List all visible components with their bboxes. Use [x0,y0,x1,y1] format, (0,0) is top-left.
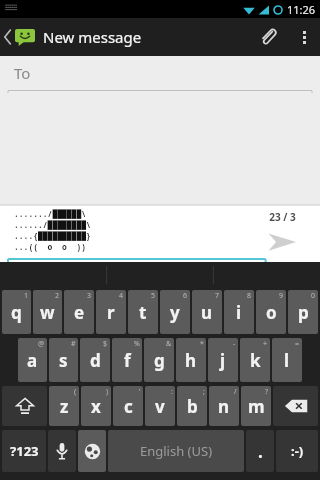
staticText: c [124,395,133,418]
button[interactable]: o [256,290,286,334]
staticText: / [234,387,237,397]
staticText: t [139,301,147,324]
staticText: ; [203,387,205,397]
staticText: g [154,349,165,372]
staticText: n [218,395,230,418]
staticText: ......./██████\ [14,208,86,219]
button[interactable]: v [145,386,175,426]
button[interactable]: New message [0,18,148,56]
button[interactable]: h [176,338,206,382]
staticText: 7 [215,291,220,301]
staticText: 2 [55,291,60,301]
staticText: d [90,349,101,372]
staticText: New message [43,27,142,47]
staticText: ...(( o o )) [14,241,86,252]
button[interactable]: d [80,338,110,382]
staticText: - [233,339,236,349]
button[interactable]: n [209,386,239,426]
button[interactable]: Voice input [48,430,76,472]
staticText: 3 [87,291,92,301]
staticText: a [27,349,38,372]
button[interactable]: w [33,290,62,334]
button[interactable]: English (US) [108,430,244,472]
staticText: % [134,339,140,349]
button[interactable]: More options [288,18,320,56]
button[interactable]: To [8,56,312,90]
staticText: 23 / 3 [269,210,296,224]
staticText: ) [106,387,109,397]
staticText: 5 [151,291,156,301]
staticText: ....../████████\ [14,219,91,230]
staticText: : [171,387,173,397]
staticText: ? [265,387,269,397]
button[interactable]: :-) [276,430,318,472]
staticText: ....{██████████} [14,230,91,241]
staticText: r [107,301,115,324]
staticText: k [250,349,261,372]
button[interactable]: ......./██████\ [0,206,244,258]
staticText: $ [103,339,108,349]
button[interactable]: Delete [273,386,318,426]
staticText: b [187,395,198,418]
button[interactable]: g [144,338,174,382]
staticText: ( [74,387,77,397]
staticText: f [124,349,131,372]
staticText: 1 [24,291,29,301]
staticText: 11:26 [287,2,316,17]
button[interactable]: u [192,290,222,334]
button[interactable]: e [64,290,94,334]
staticText: v [155,395,165,418]
staticText: s [59,349,68,372]
button[interactable]: p [288,290,318,334]
button[interactable]: j [208,338,238,382]
staticText: h [185,349,197,372]
staticText: To [14,63,31,83]
button[interactable]: Send [260,229,304,255]
staticText: e [74,301,85,324]
button[interactable]: z [49,386,79,426]
button[interactable]: q [2,290,31,334]
staticText: + [263,339,268,349]
staticText: & [166,339,172,349]
staticText: x [91,395,101,418]
button[interactable]: t [128,290,158,334]
button[interactable]: f [112,338,142,382]
staticText: @ [38,339,45,349]
staticText: j [220,349,226,372]
button[interactable]: ?123 [2,430,46,472]
staticText: w [40,301,55,324]
button[interactable]: . [246,430,274,472]
staticText: English (US) [140,442,213,460]
button[interactable]: b [177,386,207,426]
staticText: z [60,395,69,418]
button[interactable]: r [96,290,126,334]
staticText: = [295,339,300,349]
button[interactable]: m [241,386,271,426]
staticText: . [258,440,263,463]
button[interactable]: k [240,338,270,382]
button[interactable]: Attach [248,18,288,56]
button[interactable]: s [49,338,78,382]
staticText: m [248,395,265,418]
button[interactable]: c [113,386,143,426]
staticText: 4 [119,291,124,301]
staticText: l [284,349,290,372]
staticText: ’ [139,387,141,397]
staticText: q [11,301,22,324]
button[interactable]: x [81,386,111,426]
button[interactable]: y [160,290,190,334]
staticText: 6 [183,291,188,301]
staticText: * [200,339,204,349]
staticText: :-) [291,442,304,460]
staticText: 9 [279,291,284,301]
staticText: p [298,301,309,324]
button[interactable]: i [224,290,254,334]
button[interactable]: Shift [2,386,47,426]
staticText: ?123 [10,442,39,460]
staticText: 0 [311,291,316,301]
button[interactable]: a [18,338,47,382]
staticText: i [236,301,242,324]
button[interactable]: l [272,338,302,382]
button[interactable]: Change language [78,430,106,472]
